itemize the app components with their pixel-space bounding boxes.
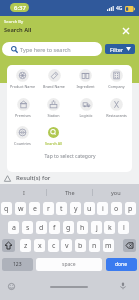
button[interactable]: Logistic	[70, 96, 101, 124]
button[interactable]: m	[103, 239, 114, 252]
button[interactable]: p	[125, 202, 136, 215]
staticText: 123	[13, 261, 22, 268]
staticText: space	[62, 261, 76, 268]
staticText: done	[115, 261, 128, 268]
button[interactable]: o	[111, 202, 122, 215]
button[interactable]: l	[118, 221, 129, 234]
button[interactable]: Company	[101, 67, 132, 95]
button[interactable]: Microphone	[118, 281, 128, 291]
staticText: i	[102, 204, 104, 214]
button[interactable]: n	[89, 239, 100, 252]
staticText: Product Name	[10, 84, 35, 89]
button[interactable]: t	[56, 202, 67, 215]
button[interactable]: done	[106, 258, 137, 271]
staticText: g	[66, 223, 71, 233]
button[interactable]: v	[61, 239, 72, 252]
button[interactable]: The	[47, 184, 93, 200]
staticText: l	[123, 223, 125, 233]
staticText: Restaurants	[106, 113, 127, 118]
button[interactable]: z	[20, 239, 31, 252]
staticText: e	[33, 204, 37, 214]
button[interactable]: space	[36, 258, 102, 271]
staticText: d	[39, 223, 44, 233]
staticText: h	[80, 223, 85, 233]
staticText: Type here to search	[20, 46, 71, 53]
button[interactable]: k	[104, 221, 115, 234]
button[interactable]: Station	[38, 96, 69, 124]
button[interactable]: I	[0, 184, 47, 200]
button[interactable]: y	[70, 202, 81, 215]
button[interactable]: Filter	[105, 44, 135, 54]
button[interactable]: s	[22, 221, 33, 234]
button[interactable]: Emoji	[7, 282, 16, 291]
staticText: Ingredient	[76, 84, 95, 89]
staticText: t	[60, 204, 63, 214]
staticText: Logistic	[79, 113, 93, 118]
staticText: I	[23, 189, 25, 196]
staticText: The	[65, 189, 75, 196]
button[interactable]: Ingredient	[70, 67, 101, 95]
staticText: Result(s) for	[16, 174, 51, 182]
staticText: n	[92, 241, 97, 251]
button[interactable]: Product Name	[7, 67, 38, 95]
button[interactable]	[123, 239, 136, 252]
staticText: m	[105, 241, 112, 251]
staticText: Filter	[110, 46, 124, 53]
button[interactable]: Premises	[7, 96, 38, 124]
staticText: u	[87, 204, 92, 214]
staticText: Search By	[4, 19, 24, 25]
button[interactable]: you	[93, 184, 139, 200]
staticText: r	[47, 204, 50, 214]
button[interactable]: r	[43, 202, 54, 215]
button[interactable]	[2, 239, 15, 252]
staticText: Premises	[15, 113, 31, 118]
button[interactable]: g	[63, 221, 74, 234]
button[interactable]: Countries	[7, 124, 38, 152]
button[interactable]: Search All	[38, 124, 69, 152]
staticText: j	[96, 223, 98, 233]
staticText: x	[38, 241, 42, 251]
staticText: z	[24, 241, 28, 251]
staticText: b	[78, 241, 83, 251]
staticText: f	[53, 223, 56, 233]
staticText: v	[65, 241, 69, 251]
staticText: Brand Name	[43, 84, 65, 89]
button[interactable]: h	[77, 221, 88, 234]
staticText: Search All	[45, 141, 62, 146]
button[interactable]: j	[91, 221, 102, 234]
button[interactable]: Brand Name	[38, 67, 69, 95]
staticText: Tap to select category	[44, 153, 96, 160]
staticText: q	[4, 204, 9, 214]
button[interactable]: b	[75, 239, 86, 252]
button[interactable]: c	[48, 239, 59, 252]
button[interactable]: q	[1, 202, 12, 215]
button[interactable]: i	[97, 202, 108, 215]
staticText: c	[52, 241, 56, 251]
staticText: 4G	[116, 5, 123, 12]
staticText: k	[108, 223, 112, 233]
staticText: a	[12, 223, 16, 233]
staticText: o	[114, 204, 119, 214]
staticText: you	[111, 189, 121, 196]
staticText: Station	[47, 113, 60, 118]
button[interactable]: u	[84, 202, 95, 215]
staticText: y	[74, 204, 78, 214]
staticText: p	[128, 204, 133, 214]
staticText: Countries	[14, 141, 31, 146]
staticText: Search All	[4, 26, 32, 34]
staticText: w	[18, 204, 24, 214]
button[interactable]: Type here to search	[2, 42, 102, 56]
button[interactable]: a	[8, 221, 19, 234]
staticText: 6:37	[14, 4, 26, 12]
button[interactable]: Restaurants	[101, 96, 132, 124]
button[interactable]: x	[34, 239, 45, 252]
button[interactable]: e	[29, 202, 40, 215]
button[interactable]: f	[49, 221, 60, 234]
button[interactable]: w	[15, 202, 26, 215]
staticText: Company	[108, 84, 125, 89]
button[interactable]: 123	[2, 258, 33, 271]
staticText: s	[26, 223, 30, 233]
button[interactable]: d	[36, 221, 47, 234]
button[interactable]: Close	[118, 23, 133, 38]
